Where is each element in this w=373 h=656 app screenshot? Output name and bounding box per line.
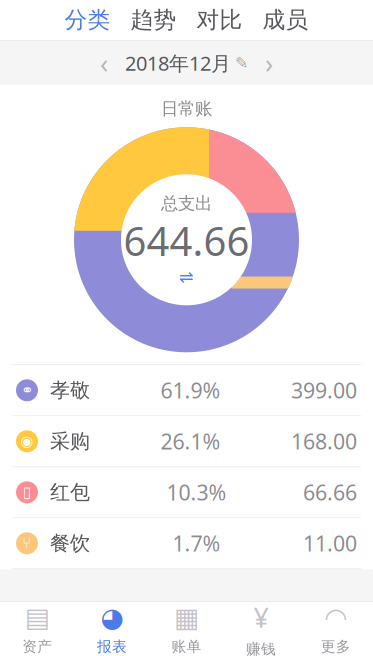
button[interactable]: Previous month: [87, 41, 121, 85]
button[interactable]: ¥: [224, 602, 298, 656]
staticText: 1.7%: [172, 529, 220, 557]
staticText: 168.00: [291, 427, 357, 455]
button[interactable]: ▯: [0, 467, 373, 517]
button[interactable]: ▦: [149, 602, 224, 656]
button[interactable]: 分类: [54, 0, 120, 40]
staticText: 26.1%: [160, 427, 220, 455]
button[interactable]: 成员: [252, 0, 318, 40]
staticText: ✎: [235, 54, 248, 72]
button[interactable]: ◕: [75, 602, 149, 656]
staticText: 对比: [196, 6, 242, 34]
staticText: ‹: [100, 45, 108, 81]
button[interactable]: ◠: [298, 602, 373, 656]
button[interactable]: 趋势: [120, 0, 186, 40]
staticText: 总支出: [161, 193, 212, 214]
button[interactable]: ▤: [0, 602, 75, 656]
staticText: ▯: [23, 484, 31, 501]
staticText: 10.3%: [166, 478, 226, 506]
button[interactable]: 对比: [186, 0, 252, 40]
staticText: 孝敬: [50, 378, 90, 403]
staticText: ⚭: [21, 382, 33, 399]
staticText: ▤: [25, 602, 50, 633]
staticText: 66.66: [303, 478, 357, 506]
staticText: 成员: [262, 6, 308, 34]
staticText: 账单: [171, 638, 201, 656]
button[interactable]: 2018年12月: [121, 41, 252, 85]
staticText: ›: [265, 45, 273, 81]
staticText: 餐饮: [50, 531, 90, 556]
button[interactable]: ◉: [0, 416, 373, 466]
staticText: ◉: [20, 433, 33, 450]
staticText: 2018年12月: [125, 50, 231, 76]
button[interactable]: ⑂: [0, 518, 373, 568]
staticText: ⇌: [179, 267, 194, 287]
staticText: 资产: [22, 638, 52, 656]
staticText: 644.66: [123, 214, 249, 267]
staticText: 赚钱: [246, 640, 276, 656]
staticText: ◠: [324, 602, 347, 633]
staticText: ⑂: [22, 536, 31, 550]
staticText: ◕: [100, 602, 123, 633]
staticText: 采购: [50, 429, 90, 454]
button[interactable]: Next month: [252, 41, 286, 85]
staticText: 趋势: [130, 6, 176, 34]
staticText: 399.00: [291, 376, 357, 404]
staticText: 红包: [50, 480, 90, 505]
staticText: 报表: [97, 638, 127, 656]
staticText: ▦: [174, 602, 199, 633]
staticText: 分类: [64, 6, 110, 34]
button[interactable]: ⚭: [0, 365, 373, 415]
staticText: 日常账: [161, 98, 212, 119]
staticText: 61.9%: [160, 376, 220, 404]
staticText: 更多: [321, 638, 351, 656]
staticText: 11.00: [303, 529, 357, 557]
staticText: ¥: [254, 600, 269, 635]
